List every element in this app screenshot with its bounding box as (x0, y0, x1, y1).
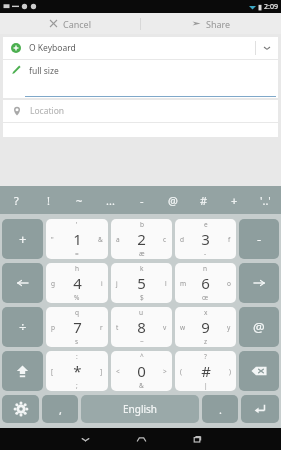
staticText: @ (168, 193, 178, 208)
staticText: f (228, 235, 231, 244)
button[interactable]: ... (95, 186, 126, 214)
staticText: $ (140, 293, 144, 302)
staticText: English (123, 402, 158, 416)
button[interactable]: n (175, 263, 236, 303)
button[interactable]: ~ (64, 186, 95, 214)
staticText: 7 (73, 317, 82, 337)
button[interactable]: + (219, 186, 250, 214)
button[interactable]: Key + (2, 219, 43, 259)
staticText: q (75, 308, 79, 317)
button[interactable]: Key - (239, 219, 279, 259)
staticText: s (75, 337, 79, 346)
staticText: # (201, 361, 211, 381)
staticText: - (140, 193, 144, 208)
staticText: g (51, 279, 55, 288)
staticText: ! (47, 193, 50, 208)
button[interactable]: ^ (111, 351, 172, 391)
staticText: i (101, 279, 103, 288)
staticText: . (219, 402, 222, 417)
button[interactable]: b (111, 219, 172, 259)
button[interactable]: - (126, 186, 157, 214)
button[interactable]: x (175, 307, 236, 347)
button[interactable]: Key ÷ (2, 307, 43, 347)
staticText: + (19, 230, 27, 248)
button[interactable]: , (42, 395, 78, 423)
button[interactable]: Enter (241, 395, 279, 423)
staticText: p (51, 323, 55, 332)
staticText: m (180, 279, 187, 288)
button[interactable]: e (175, 219, 236, 259)
button[interactable]: English (81, 395, 199, 423)
staticText: > (163, 367, 167, 376)
staticText: 6 (201, 273, 210, 293)
button[interactable]: Key → (239, 263, 279, 303)
button[interactable]: h (46, 263, 108, 303)
button[interactable]: Recent apps (169, 428, 225, 450)
staticText: 9 (201, 317, 210, 337)
staticText: 8 (137, 317, 146, 337)
button[interactable]: : (46, 351, 108, 391)
staticText: ~ (76, 193, 83, 208)
button[interactable]: ' (46, 219, 108, 259)
button[interactable]: ! (32, 186, 64, 214)
staticText: d (180, 235, 184, 244)
staticText: : (76, 352, 78, 361)
button[interactable]: u (111, 307, 172, 347)
staticText: c (163, 235, 167, 244)
staticText: - (257, 230, 262, 248)
button[interactable]: full size (3, 60, 278, 98)
button[interactable]: Share (141, 13, 281, 34)
staticText: w (180, 323, 186, 332)
staticText: @ (253, 318, 265, 336)
staticText: 2 (137, 229, 146, 249)
button[interactable]: Key @ (239, 307, 279, 347)
staticText: o (227, 279, 231, 288)
button[interactable]: '..' (250, 186, 281, 214)
staticText: & (98, 235, 103, 244)
button[interactable]: ? (0, 186, 32, 214)
staticText: - (204, 249, 207, 258)
staticText: ) (229, 367, 231, 376)
button[interactable]: Hide keyboard (57, 428, 113, 450)
button[interactable]: O Keyboard (3, 37, 278, 59)
button[interactable]: Settings (2, 395, 39, 423)
button[interactable]: @ (157, 186, 188, 214)
button[interactable]: k (111, 263, 172, 303)
staticText: 5 (137, 273, 146, 293)
button[interactable]: Location (3, 100, 278, 122)
staticText: [ (51, 367, 54, 376)
staticText: # (200, 193, 208, 208)
staticText: n (203, 264, 208, 273)
staticText: e (204, 220, 208, 229)
staticText: ( (180, 367, 182, 376)
staticText: Location (30, 105, 65, 117)
staticText: & (139, 381, 144, 390)
button[interactable]: q (46, 307, 108, 347)
button[interactable]: Expand account (256, 37, 278, 59)
button[interactable]: Key ⌫ (239, 351, 279, 391)
staticText: , (59, 402, 62, 417)
staticText: + (231, 193, 238, 208)
staticText: z (204, 337, 208, 346)
staticText: k (140, 264, 144, 273)
staticText: < (116, 367, 120, 376)
button[interactable]: . (202, 395, 238, 423)
button[interactable]: Key ← (2, 263, 43, 303)
staticText: l (165, 279, 167, 288)
staticText: ; (76, 381, 78, 390)
button[interactable]: Key ⬆ (2, 351, 43, 391)
button[interactable]: Cancel (0, 13, 140, 34)
button[interactable]: ? (175, 351, 236, 391)
staticText: u (139, 308, 144, 317)
button[interactable]: Home (113, 428, 169, 450)
staticText: ÷ (19, 318, 27, 336)
button[interactable]: # (188, 186, 219, 214)
staticText: y (227, 323, 231, 332)
staticText: % (74, 293, 80, 302)
staticText: ] (100, 367, 103, 376)
staticText: 2:09 (264, 2, 278, 12)
staticText: 1 (73, 229, 82, 249)
staticText: Share (206, 18, 231, 30)
staticText: 0 (137, 361, 146, 381)
staticText: ... (106, 193, 115, 208)
